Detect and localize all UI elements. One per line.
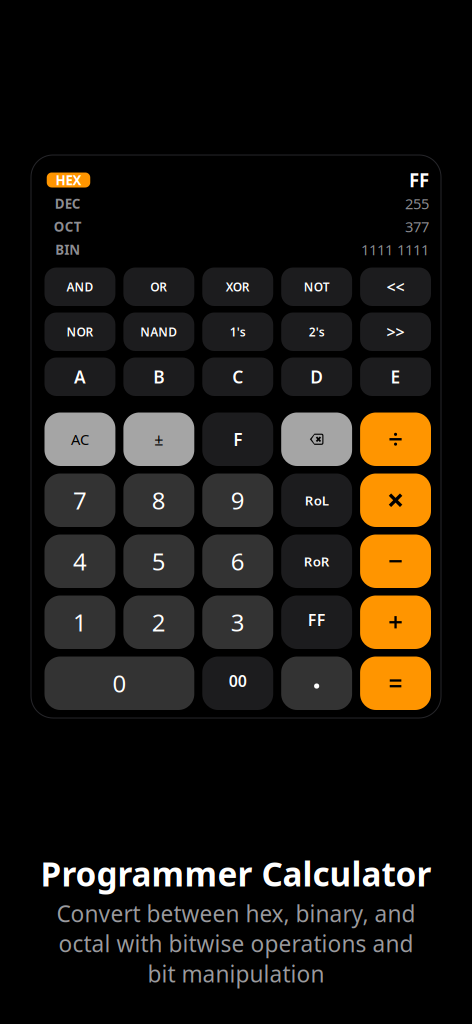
button[interactable]: 1's [202, 312, 273, 351]
button[interactable]: 00 [202, 656, 273, 710]
button[interactable]: C [202, 357, 273, 396]
staticText: XOR [226, 279, 250, 295]
staticText: 3 [231, 606, 245, 638]
button[interactable]: Decimal point [281, 656, 352, 710]
button[interactable]: 3 [202, 595, 273, 649]
button[interactable]: 4 [44, 534, 115, 588]
button[interactable]: OR [123, 267, 194, 306]
staticText: octal with bitwise operations and [58, 928, 413, 958]
staticText: NOR [66, 324, 93, 340]
staticText: NOT [304, 279, 330, 295]
button[interactable]: B [123, 357, 194, 396]
staticText: OCT [54, 218, 82, 235]
staticText: 2's [309, 324, 325, 340]
button[interactable]: 2 [123, 595, 194, 649]
button[interactable]: 8 [123, 473, 194, 527]
button[interactable]: 2's [281, 312, 352, 351]
staticText: 00 [229, 670, 247, 691]
button[interactable]: 7 [44, 473, 115, 527]
staticText: D [310, 365, 323, 388]
button[interactable]: FF [281, 595, 352, 649]
staticText: DEC [55, 195, 81, 212]
staticText: 4 [73, 545, 87, 577]
button[interactable]: RoL [281, 473, 352, 527]
button[interactable]: NOT [281, 267, 352, 306]
staticText: AC [71, 429, 89, 449]
button[interactable]: NOR [44, 312, 115, 351]
button[interactable]: NAND [123, 312, 194, 351]
staticText: Convert between hex, binary, and [56, 898, 415, 928]
staticText: B [153, 365, 164, 388]
button[interactable]: D [281, 357, 352, 396]
button[interactable]: << [360, 267, 431, 306]
staticText: 377 [405, 217, 429, 236]
staticText: NAND [140, 324, 177, 340]
staticText: bit manipulation [147, 959, 324, 989]
staticText: 1's [230, 324, 246, 340]
staticText: << [387, 276, 405, 297]
staticText: 9 [231, 484, 245, 516]
staticText: E [391, 365, 401, 388]
staticText: ± [154, 429, 163, 450]
button[interactable]: XOR [202, 267, 273, 306]
staticText: OR [150, 279, 167, 295]
button[interactable]: 5 [123, 534, 194, 588]
staticText: FF [308, 609, 326, 630]
button[interactable]: ± [123, 412, 194, 466]
button[interactable]: Add [360, 595, 431, 649]
button[interactable]: 1 [44, 595, 115, 649]
button[interactable]: Delete [281, 412, 352, 466]
staticText: F [233, 428, 242, 451]
button[interactable]: Divide [360, 412, 431, 466]
staticText: BIN [55, 241, 80, 258]
staticText: RoL [305, 491, 329, 509]
staticText: 255 [405, 194, 429, 213]
button[interactable]: A [44, 357, 115, 396]
staticText: FF [409, 168, 429, 192]
button[interactable]: Equals [360, 656, 431, 710]
button[interactable]: 9 [202, 473, 273, 527]
button[interactable]: >> [360, 312, 431, 351]
staticText: 2 [152, 606, 166, 638]
button[interactable]: E [360, 357, 431, 396]
staticText: RoR [304, 552, 330, 570]
button[interactable]: AND [44, 267, 115, 306]
button[interactable]: 0 [44, 656, 194, 710]
button[interactable]: 6 [202, 534, 273, 588]
button[interactable]: Multiply [360, 473, 431, 527]
staticText: 8 [152, 484, 166, 516]
button[interactable]: F [202, 412, 273, 466]
staticText: A [74, 365, 86, 388]
staticText: 0 [112, 667, 126, 699]
staticText: 5 [152, 545, 166, 577]
staticText: C [232, 365, 243, 388]
staticText: 1111 1111 [361, 240, 429, 259]
button[interactable]: RoR [281, 534, 352, 588]
staticText: AND [66, 279, 93, 295]
button[interactable]: AC [44, 412, 115, 466]
staticText: 7 [73, 484, 87, 516]
staticText: HEX [55, 171, 81, 189]
staticText: 6 [231, 545, 245, 577]
staticText: 1 [73, 606, 87, 638]
staticText: >> [387, 321, 405, 342]
staticText: Programmer Calculator [40, 851, 431, 896]
button[interactable]: Subtract [360, 534, 431, 588]
